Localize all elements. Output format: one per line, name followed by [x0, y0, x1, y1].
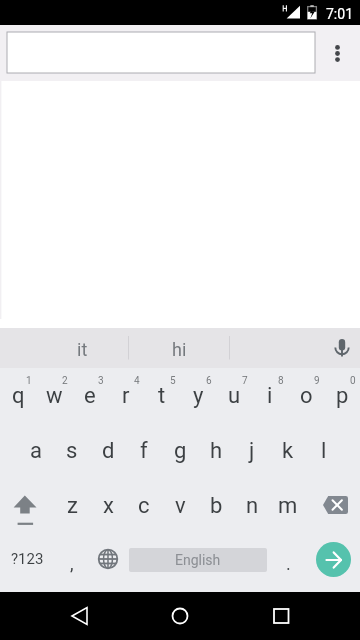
- staticText: z: [67, 493, 78, 519]
- button[interactable]: .: [268, 531, 304, 587]
- staticText: t: [158, 383, 166, 409]
- staticText: b: [210, 493, 223, 519]
- button[interactable]: Enter: [306, 531, 360, 587]
- staticText: s: [66, 438, 78, 464]
- button[interactable]: s: [54, 424, 90, 478]
- button[interactable]: 4: [108, 369, 144, 423]
- button[interactable]: 6: [180, 369, 216, 423]
- staticText: r: [122, 383, 130, 409]
- button[interactable]: hi: [129, 328, 229, 368]
- staticText: j: [249, 438, 255, 464]
- staticText: 3: [98, 375, 104, 387]
- button[interactable]: Shift: [0, 479, 54, 533]
- button[interactable]: m: [270, 479, 306, 533]
- button[interactable]: d: [90, 424, 126, 478]
- button[interactable]: it: [36, 328, 128, 368]
- staticText: k: [282, 438, 294, 464]
- button[interactable]: c: [126, 479, 162, 533]
- staticText: e: [84, 383, 96, 409]
- staticText: hi: [172, 339, 187, 360]
- staticText: f: [140, 438, 148, 464]
- staticText: l: [321, 438, 327, 464]
- staticText: a: [30, 438, 42, 464]
- button[interactable]: v: [162, 479, 198, 533]
- staticText: p: [336, 383, 349, 409]
- staticText: 9: [314, 375, 320, 387]
- staticText: q: [12, 383, 25, 409]
- button[interactable]: 2: [36, 369, 72, 423]
- staticText: .: [286, 553, 291, 574]
- staticText: o: [300, 383, 313, 409]
- staticText: 6: [206, 375, 212, 387]
- button[interactable]: 3: [72, 369, 108, 423]
- button[interactable]: 7: [216, 369, 252, 423]
- staticText: it: [77, 339, 88, 360]
- staticText: 1: [26, 375, 32, 387]
- button[interactable]: h: [198, 424, 234, 478]
- button[interactable]: More options: [315, 25, 360, 81]
- button[interactable]: j: [234, 424, 270, 478]
- staticText: ?123: [11, 550, 44, 568]
- staticText: y: [193, 383, 204, 409]
- button[interactable]: Recents: [257, 592, 305, 640]
- staticText: m: [278, 493, 298, 519]
- button[interactable]: f: [126, 424, 162, 478]
- button[interactable]: l: [306, 424, 342, 478]
- staticText: d: [102, 438, 115, 464]
- button[interactable]: 8: [252, 369, 288, 423]
- button[interactable]: Home: [156, 592, 204, 640]
- button[interactable]: ?123: [0, 531, 54, 587]
- staticText: v: [175, 493, 186, 519]
- button[interactable]: 0: [324, 369, 360, 423]
- staticText: 0: [350, 375, 356, 387]
- staticText: 7: [242, 375, 248, 387]
- button[interactable]: z: [54, 479, 90, 533]
- staticText: h: [210, 438, 223, 464]
- staticText: x: [103, 493, 114, 519]
- staticText: 5: [170, 375, 176, 387]
- button[interactable]: b: [198, 479, 234, 533]
- staticText: u: [228, 383, 241, 409]
- button[interactable]: Backspace: [306, 479, 360, 533]
- staticText: English: [175, 552, 221, 568]
- staticText: 2: [62, 375, 68, 387]
- button[interactable]: k: [270, 424, 306, 478]
- button[interactable]: n: [234, 479, 270, 533]
- button[interactable]: [7, 32, 315, 73]
- button[interactable]: English: [129, 548, 267, 572]
- button[interactable]: 9: [288, 369, 324, 423]
- button[interactable]: Change language: [90, 531, 126, 587]
- staticText: g: [174, 438, 187, 464]
- button[interactable]: 5: [144, 369, 180, 423]
- button[interactable]: Back: [56, 592, 104, 640]
- button[interactable]: 1: [0, 369, 36, 423]
- staticText: 7:01: [326, 6, 353, 22]
- button[interactable]: Voice input: [322, 329, 360, 369]
- button[interactable]: a: [18, 424, 54, 478]
- button[interactable]: x: [90, 479, 126, 533]
- staticText: 8: [278, 375, 284, 387]
- staticText: w: [46, 383, 63, 409]
- staticText: n: [246, 493, 259, 519]
- button[interactable]: g: [162, 424, 198, 478]
- staticText: ,: [70, 553, 74, 574]
- staticText: 4: [134, 375, 140, 387]
- staticText: i: [267, 383, 273, 409]
- button[interactable]: ,: [54, 531, 90, 587]
- staticText: c: [138, 493, 150, 519]
